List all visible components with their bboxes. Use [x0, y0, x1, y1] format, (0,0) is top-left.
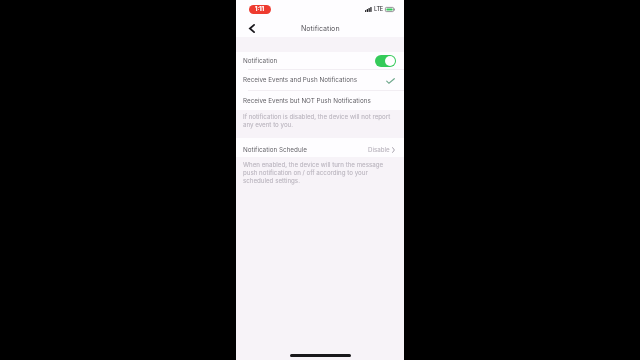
staticText: Receive Events but NOT Push Notification… — [243, 97, 371, 105]
button[interactable]: Receive Events and Push Notifications — [236, 70, 404, 90]
button[interactable]: Back — [245, 22, 258, 35]
button[interactable]: Notification — [236, 52, 404, 69]
staticText: If notification is disabled, the device … — [243, 113, 398, 129]
staticText: Notification — [243, 57, 278, 65]
button[interactable]: Receive Events but NOT Push Notification… — [236, 91, 404, 110]
staticText: 1:11 — [255, 6, 265, 13]
staticText: Receive Events and Push Notifications — [243, 76, 357, 84]
button[interactable]: Notification Schedule — [236, 138, 404, 157]
staticText: Notification — [301, 24, 340, 33]
staticText: Disable — [368, 146, 390, 154]
staticText: Notification Schedule — [243, 146, 307, 154]
staticText: When enabled, the device will turn the m… — [243, 161, 396, 185]
staticText: LTE — [374, 6, 383, 13]
button[interactable]: Notification toggle — [375, 55, 396, 67]
